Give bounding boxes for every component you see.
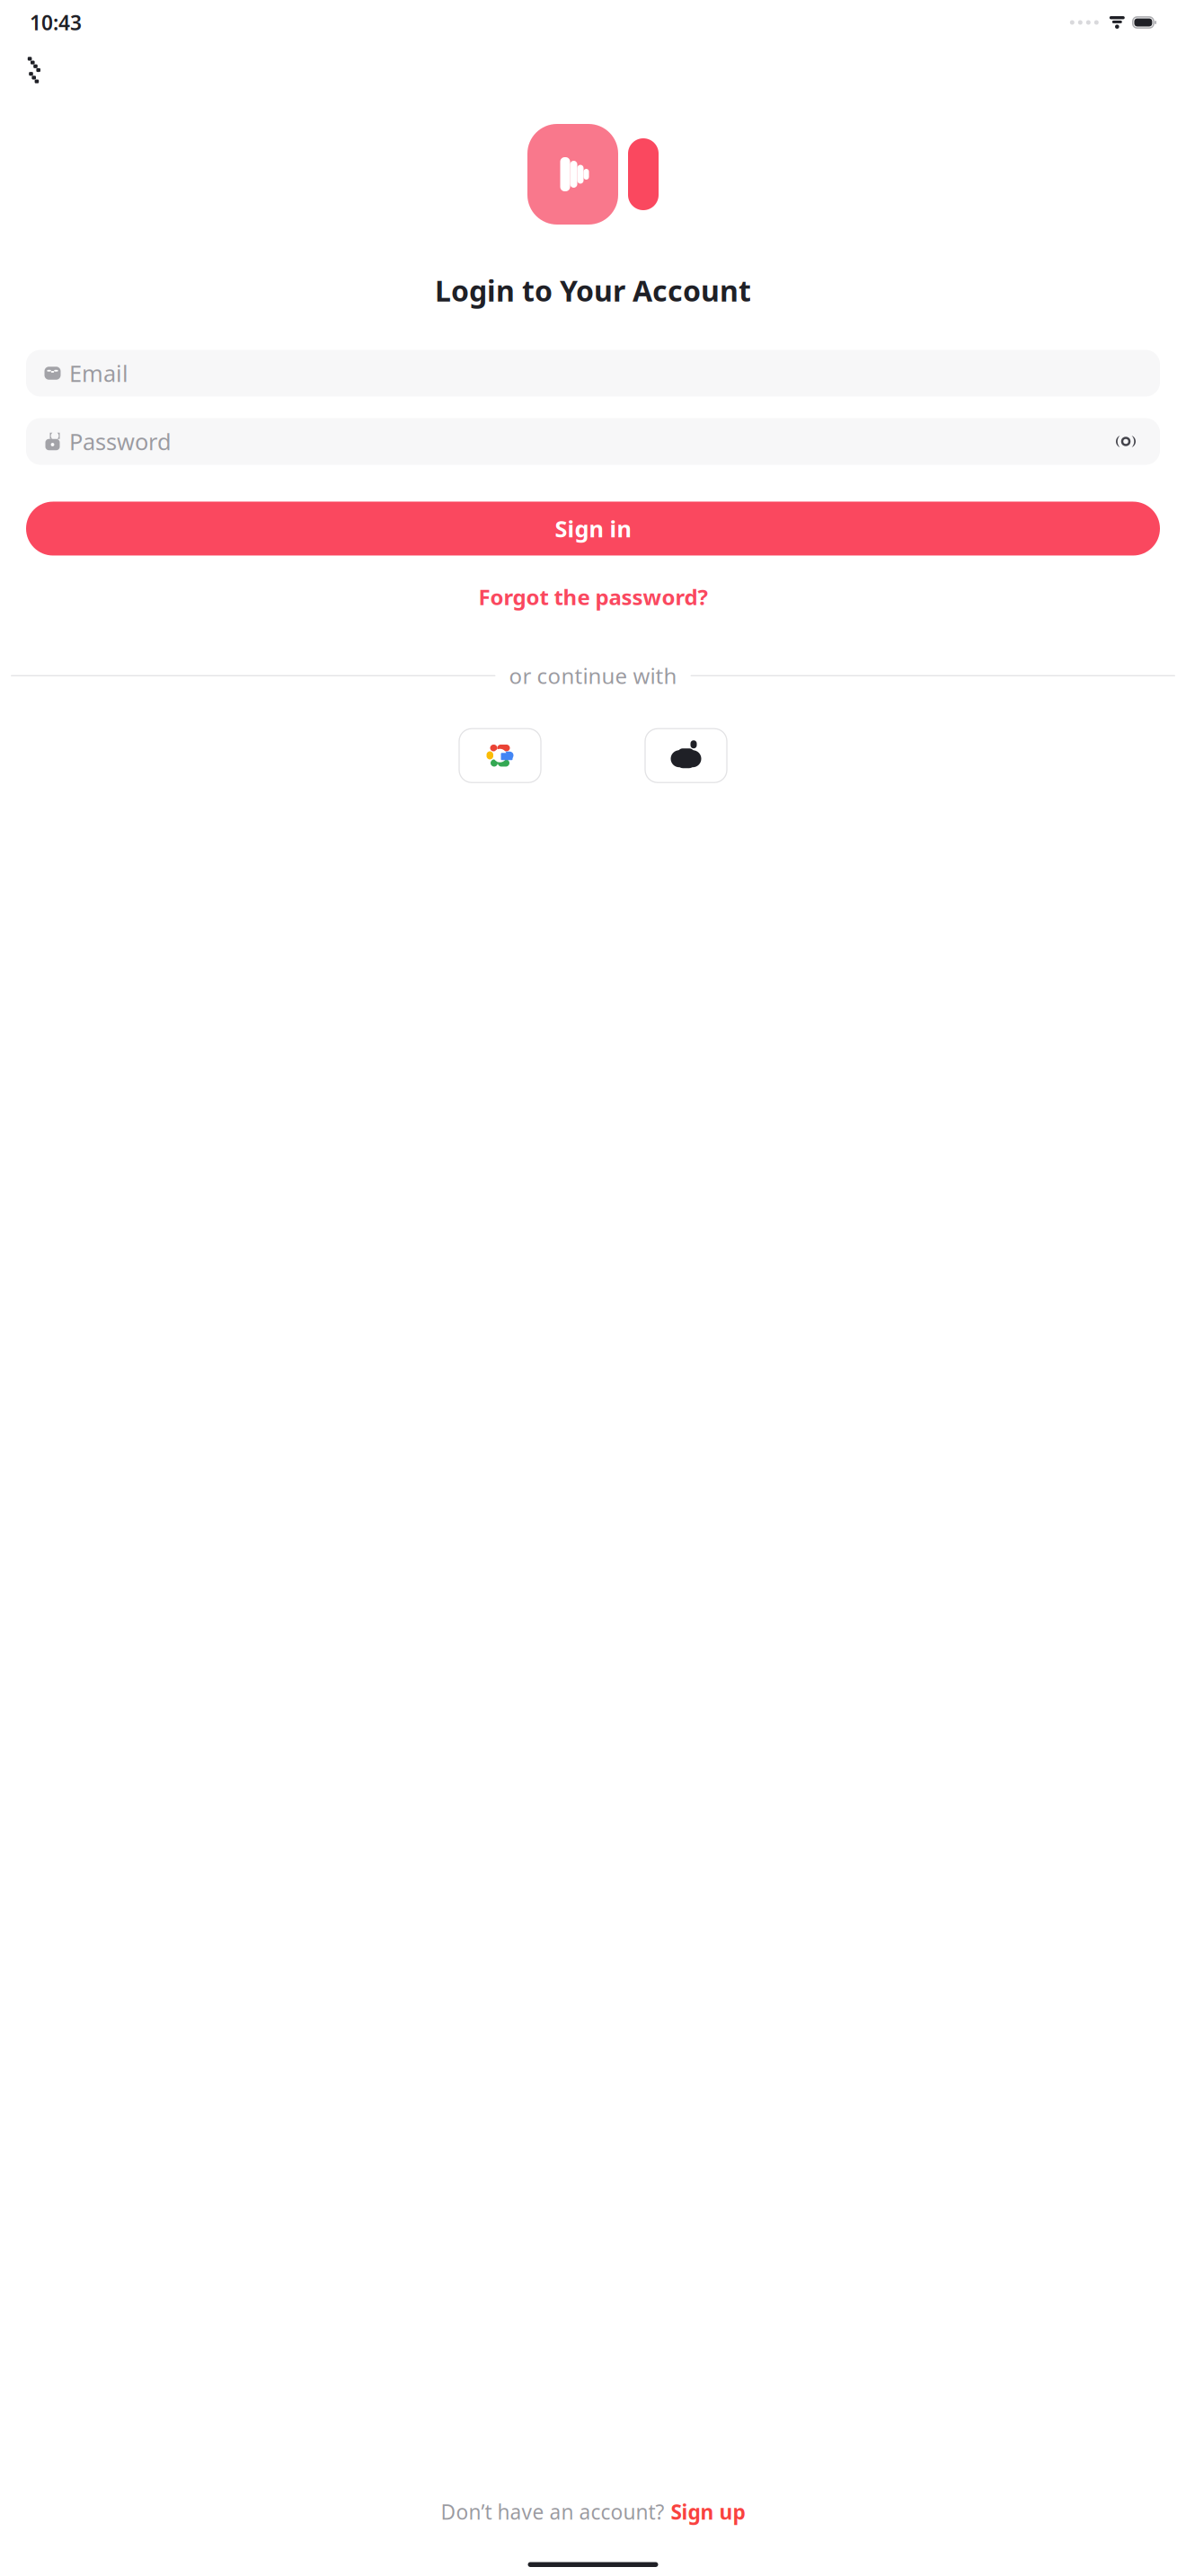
staticText: Forgot the password? [478, 582, 708, 611]
button[interactable]: Continue with Apple [645, 729, 727, 783]
staticText: Sign up [671, 2498, 745, 2525]
button[interactable]: Continue with Google [459, 729, 541, 783]
button[interactable]: Show password [1110, 429, 1142, 454]
button[interactable]: Sign in [26, 502, 1160, 556]
staticText: or continue with [509, 661, 677, 690]
staticText: Email [69, 358, 128, 388]
button[interactable]: Forgot the password? [462, 573, 724, 620]
staticText: Don’t have an account? [441, 2498, 664, 2525]
staticText: Sign in [555, 513, 631, 544]
staticText: Login to Your Account [435, 271, 751, 309]
button[interactable]: Back [19, 49, 48, 92]
staticText: Password [69, 426, 172, 457]
staticText: 10:43 [30, 9, 82, 36]
button[interactable]: Don’t have an account? [425, 2490, 761, 2533]
